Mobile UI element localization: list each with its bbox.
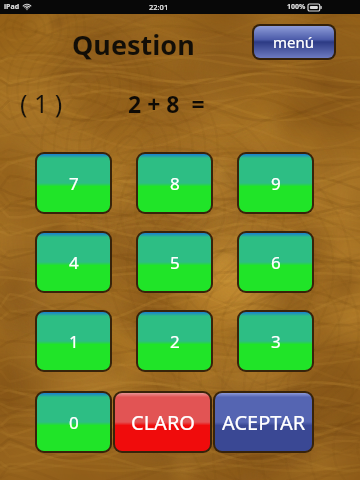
button[interactable]: 3: [239, 312, 312, 370]
staticText: 6: [271, 251, 281, 274]
staticText: 3: [271, 330, 281, 353]
staticText: 9: [271, 172, 281, 195]
button[interactable]: 0: [37, 393, 110, 451]
staticText: 0: [69, 411, 79, 434]
staticText: iPad: [4, 2, 20, 12]
staticText: 100%: [287, 2, 306, 12]
button[interactable]: 1: [37, 312, 110, 370]
button[interactable]: 2: [138, 312, 211, 370]
button[interactable]: 8: [138, 154, 211, 212]
staticText: ( 1 ): [20, 86, 63, 120]
staticText: 22:01: [149, 2, 169, 12]
button[interactable]: 4: [37, 233, 110, 291]
staticText: CLARO: [131, 409, 195, 436]
staticText: 4: [69, 251, 79, 274]
staticText: menú: [273, 32, 315, 52]
button[interactable]: 6: [239, 233, 312, 291]
button[interactable]: menú: [254, 26, 334, 58]
button[interactable]: ACEPTAR: [215, 393, 312, 451]
staticText: 2: [170, 330, 180, 353]
staticText: 7: [69, 172, 79, 195]
staticText: 5: [170, 251, 180, 274]
button[interactable]: 7: [37, 154, 110, 212]
staticText: 8: [170, 172, 180, 195]
button[interactable]: 5: [138, 233, 211, 291]
button[interactable]: CLARO: [115, 393, 210, 451]
staticText: 2 + 8 =: [128, 88, 205, 119]
staticText: Question: [72, 26, 195, 63]
button[interactable]: 9: [239, 154, 312, 212]
staticText: ACEPTAR: [222, 409, 306, 436]
staticText: 1: [69, 330, 79, 353]
